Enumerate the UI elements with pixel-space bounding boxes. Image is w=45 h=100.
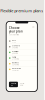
button[interactable]: Skip bbox=[31, 26, 34, 28]
button[interactable]: Family bbox=[6, 55, 37, 61]
button[interactable]: Standard bbox=[6, 44, 37, 49]
staticText: $9.99 / mo bbox=[12, 52, 18, 54]
staticText: Continue bbox=[11, 83, 16, 86]
staticText: Free bbox=[12, 41, 16, 43]
staticText: Flexible premium plans bbox=[0, 8, 43, 13]
staticText: Family bbox=[12, 56, 16, 58]
staticText: Standard bbox=[12, 45, 20, 47]
staticText: Cancel anytime bbox=[9, 34, 19, 36]
button[interactable]: Premium bbox=[6, 50, 37, 55]
staticText: Skip bbox=[31, 26, 34, 28]
staticText: Choose your plan bbox=[9, 26, 23, 33]
staticText: Business bbox=[12, 62, 19, 64]
staticText: $4.99 / mo bbox=[12, 47, 18, 49]
staticText: Basic bbox=[12, 39, 16, 41]
staticText: Contact us bbox=[12, 69, 19, 71]
staticText: $24.99 / mo bbox=[12, 64, 19, 66]
staticText: Enterprise bbox=[12, 68, 21, 69]
button[interactable]: Basic bbox=[6, 38, 37, 44]
staticText: Premium bbox=[12, 51, 18, 52]
button[interactable]: Business bbox=[6, 61, 37, 66]
staticText: $14.99 / mo bbox=[12, 58, 19, 60]
staticText: Terms apply bbox=[19, 83, 24, 86]
button[interactable]: Enterprise bbox=[6, 67, 37, 72]
button[interactable]: Continue bbox=[9, 82, 18, 87]
